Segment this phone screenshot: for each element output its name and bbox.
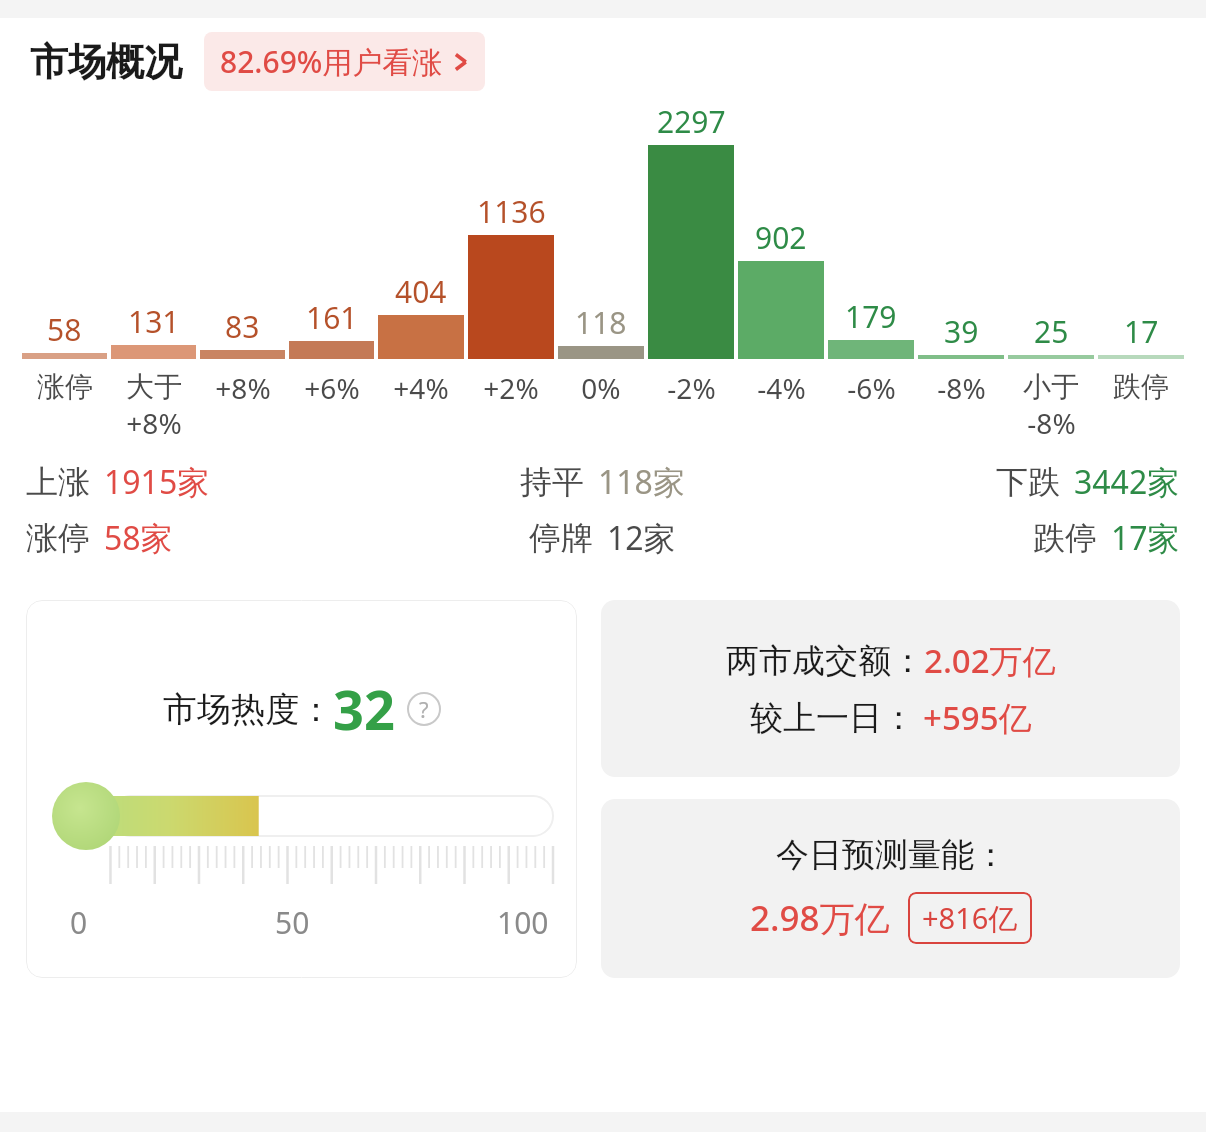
staticText: 大于 [126,369,182,404]
button[interactable]: 161 [289,101,374,407]
button[interactable]: 1136 [468,101,554,407]
staticText: +8% [215,369,271,407]
staticText: 58 [47,309,82,350]
button[interactable]: 市场热度： [26,600,577,978]
staticText: 1915家 [104,460,210,504]
staticText: 179 [845,296,897,337]
staticText: 涨停 [37,369,93,404]
staticText: 17 [1124,311,1159,352]
staticText: -2% [667,369,716,407]
staticText: 停牌 [529,518,593,558]
staticText: 83 [225,306,260,347]
staticText: 0 [70,902,88,936]
staticText: 50 [275,902,310,936]
staticText: 持平 [520,462,584,502]
staticText: 161 [306,297,358,338]
staticText: 市场热度： [163,688,333,731]
staticText: 118家 [598,460,685,504]
staticText: 上涨 [26,462,90,502]
staticText: 较上一日： [750,697,915,739]
staticText: +2% [483,369,539,407]
staticText: -8% [1027,404,1076,442]
staticText: -4% [757,369,806,407]
staticText: 今日预测量能： [776,834,1007,876]
staticText: 12家 [607,516,676,560]
staticText: +6% [304,369,360,407]
staticText: 跌停 [1113,369,1169,404]
staticText: 市场概况 [30,38,182,86]
button[interactable]: 902 [738,101,824,407]
button[interactable]: 帮助 [407,692,441,726]
button[interactable]: 404 [378,101,464,407]
staticText: -8% [937,369,986,407]
staticText: 118 [575,302,627,343]
button[interactable]: 83 [200,101,285,407]
button[interactable]: 2297 [648,101,734,407]
staticText: 25 [1034,311,1069,352]
staticText: 58家 [104,516,173,560]
staticText: 0% [581,369,621,407]
button[interactable]: 17 [1098,101,1184,404]
staticText: 404 [395,271,447,312]
staticText: +4% [393,369,449,407]
button[interactable]: 82.69%用户看涨 [204,32,485,91]
staticText: 两市成交额： [726,640,924,682]
staticText: +8% [126,404,182,442]
staticText: 2.98万亿 [750,894,890,942]
button[interactable]: 25 [1008,101,1094,442]
staticText: 小于 [1023,369,1079,404]
staticText: +595亿 [923,695,1032,740]
staticText: 17家 [1111,516,1180,560]
staticText: 82.69%用户看涨 [220,41,443,82]
button[interactable]: 58 [22,101,107,404]
staticText: 32 [333,672,395,746]
staticText: ? [419,694,429,724]
staticText: 跌停 [1033,518,1097,558]
button[interactable]: 两市成交额： [601,600,1180,777]
button[interactable]: 179 [828,101,914,407]
staticText: 涨停 [26,518,90,558]
staticText: 100 [497,902,549,936]
button[interactable]: 131 [111,101,196,442]
button[interactable]: 118 [558,101,644,407]
staticText: 2.02万亿 [924,638,1056,683]
staticText: 902 [755,217,807,258]
staticText: -6% [847,369,896,407]
staticText: 1136 [477,191,546,232]
staticText: 131 [128,301,180,342]
staticText: 2297 [657,101,726,142]
staticText: 下跌 [996,462,1060,502]
button[interactable]: 39 [918,101,1004,407]
button[interactable]: 今日预测量能： [601,799,1180,978]
staticText: +816亿 [922,898,1018,938]
staticText: 3442家 [1074,460,1180,504]
staticText: 39 [944,311,979,352]
